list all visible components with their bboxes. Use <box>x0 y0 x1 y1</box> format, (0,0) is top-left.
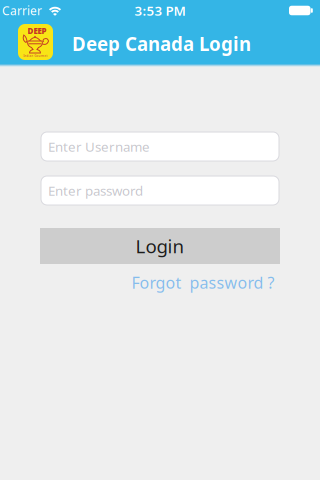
staticText: Forgot password ? <box>131 272 274 293</box>
staticText: Enter password <box>48 182 143 199</box>
staticText: Carrier <box>2 2 42 18</box>
staticText: DEEP <box>27 26 46 36</box>
staticText: Login <box>135 234 184 258</box>
staticText: 3:53 PM <box>134 2 185 19</box>
staticText: Enter Username <box>48 138 150 155</box>
button[interactable]: Forgot password ? <box>131 272 274 293</box>
button[interactable]: Enter Username <box>41 132 279 161</box>
staticText: Indian Gourmet <box>23 54 47 58</box>
staticText: Deep Canada Login <box>72 31 251 56</box>
button[interactable]: Login <box>40 228 280 264</box>
button[interactable]: Enter password <box>41 176 279 205</box>
